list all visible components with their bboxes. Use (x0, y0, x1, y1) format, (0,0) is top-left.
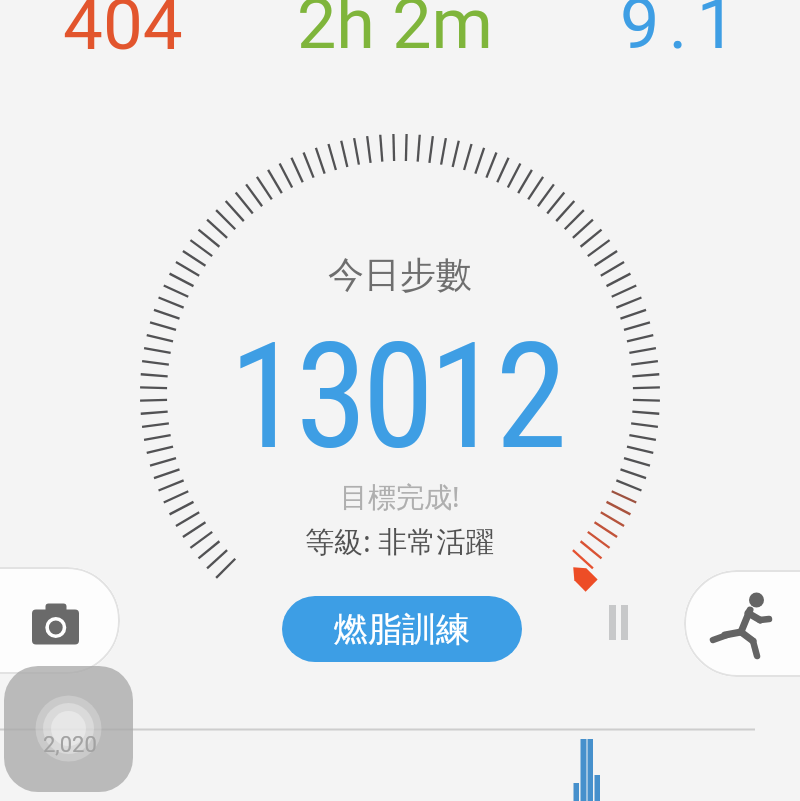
staticText: 2,020 (43, 732, 97, 758)
staticText: 9.1 (620, 0, 746, 65)
staticText: 今日步數 (328, 252, 472, 297)
staticText: 燃脂訓練 (334, 608, 470, 651)
staticText: 404 (63, 0, 183, 66)
staticText: 13012 (229, 312, 562, 483)
button[interactable]: 燃脂訓練 (282, 596, 522, 662)
staticText: 等級: 非常活躍 (305, 521, 495, 561)
button[interactable] (684, 570, 800, 677)
staticText: 目標完成! (340, 477, 460, 515)
staticText: 2h 2m (297, 0, 493, 65)
button[interactable] (0, 567, 120, 674)
button[interactable] (4, 666, 133, 792)
